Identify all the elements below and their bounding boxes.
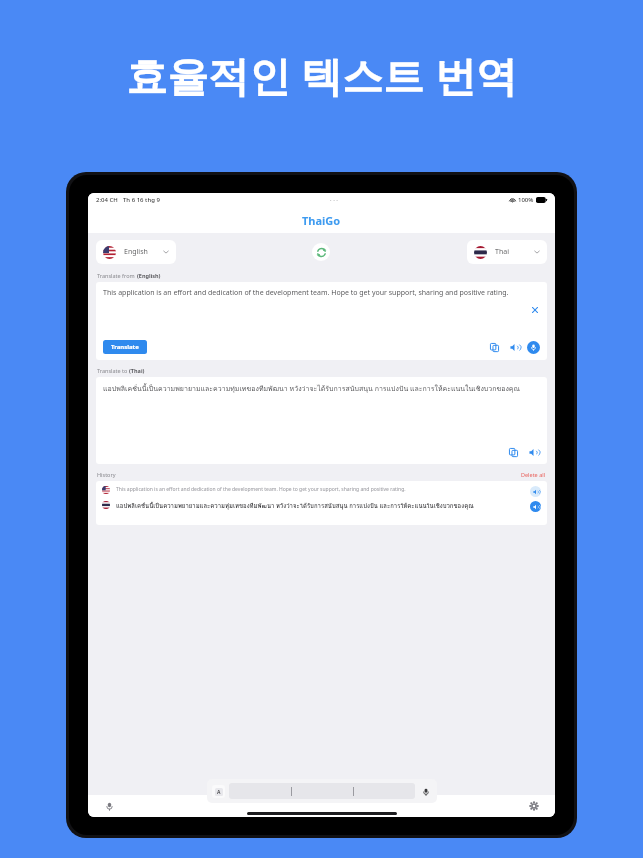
staticText: ThaiGo xyxy=(302,213,341,228)
staticText: แอปพลิเคชั่นนี้เป็นความพยายามและความทุ่ม… xyxy=(103,383,521,394)
staticText: Translate from xyxy=(97,272,137,279)
button[interactable]: Translate xyxy=(103,340,147,354)
staticText: 효율적인 텍스트 번역 xyxy=(126,47,517,103)
staticText: Th 6 16 thg 9 xyxy=(123,196,160,204)
staticText: This application is an effort and dedica… xyxy=(116,486,526,493)
button[interactable]: Keyboard language xyxy=(212,785,225,798)
staticText: A xyxy=(217,789,221,796)
button[interactable]: Thai xyxy=(467,240,547,264)
staticText: 100% xyxy=(518,196,534,204)
button[interactable]: Clear text xyxy=(530,305,540,315)
staticText: แอปพลิเคชั่นนี้เป็นความพยายามและความทุ่ม… xyxy=(116,501,526,511)
button[interactable]: Speak xyxy=(508,341,520,353)
button[interactable]: Voice input xyxy=(527,341,540,354)
button[interactable]: Dictate xyxy=(419,785,432,798)
button[interactable]: Copy translation xyxy=(507,446,519,458)
staticText: (English) xyxy=(137,272,161,279)
staticText: Delete all xyxy=(521,471,546,478)
staticText: Thai xyxy=(495,247,509,257)
button[interactable]: Delete all xyxy=(521,471,546,478)
button[interactable]: Copy xyxy=(488,341,500,353)
staticText: (Thai) xyxy=(129,367,145,374)
button[interactable] xyxy=(229,783,415,799)
button[interactable]: Swap languages xyxy=(312,243,330,261)
staticText: Translate xyxy=(111,343,139,351)
staticText: 2:04 CH xyxy=(96,196,118,204)
button[interactable]: Play source xyxy=(530,486,541,497)
staticText: This application is an effort and dedica… xyxy=(103,288,509,298)
staticText: History xyxy=(97,471,116,478)
button[interactable]: Settings xyxy=(527,799,541,813)
button[interactable]: Play translation xyxy=(530,501,541,512)
button[interactable]: Speak translation xyxy=(527,446,539,458)
staticText: English xyxy=(124,247,148,257)
button[interactable]: This application is an effort and dedica… xyxy=(96,481,547,525)
button[interactable]: English xyxy=(96,240,176,264)
button[interactable]: Microphone xyxy=(102,799,116,813)
staticText: Translate to xyxy=(97,367,129,374)
staticText: · · · xyxy=(330,196,338,204)
